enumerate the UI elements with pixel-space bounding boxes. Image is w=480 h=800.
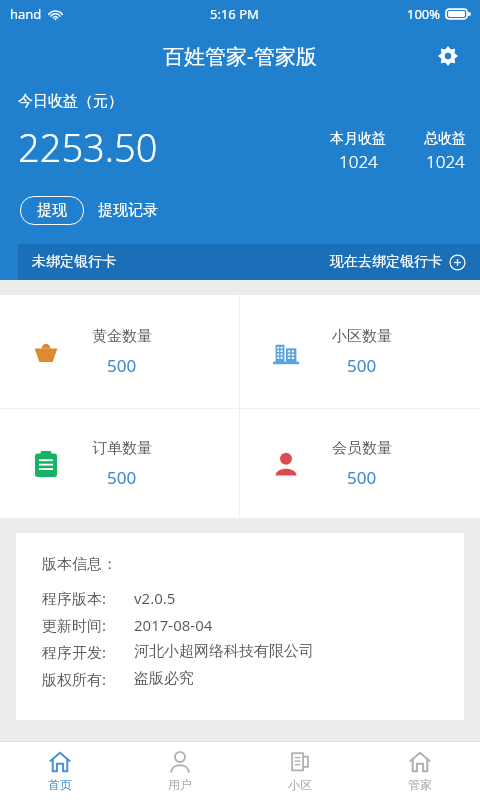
button[interactable]: 小区 (240, 742, 360, 800)
button[interactable]: 提现记录 (84, 195, 172, 226)
button[interactable]: 未绑定银行卡 (18, 244, 480, 280)
staticText: 管家 (408, 777, 432, 792)
staticText: 提现 (37, 201, 67, 220)
staticText: 现在去绑定银行卡 (330, 253, 442, 271)
staticText: 今日收益（元） (18, 92, 123, 111)
staticText: 盗版必究 (134, 669, 194, 688)
button[interactable]: 用户 (120, 742, 240, 800)
staticText: 100% (407, 5, 441, 23)
staticText: 1024 (426, 150, 465, 173)
staticText: 黄金数量 (92, 327, 152, 346)
button[interactable]: Settings (428, 36, 468, 76)
staticText: 1024 (339, 150, 378, 173)
staticText: 小区 (288, 777, 312, 792)
staticText: 500 (107, 354, 137, 377)
staticText: 河北小超网络科技有限公司 (134, 642, 314, 661)
staticText: 百姓管家-管家版 (163, 42, 317, 71)
staticText: 500 (347, 466, 377, 489)
staticText: 程序版本: (42, 588, 107, 608)
staticText: 小区数量 (332, 327, 392, 346)
staticText: 订单数量 (92, 439, 152, 458)
staticText: 提现记录 (98, 201, 158, 220)
staticText: 版权所有: (42, 669, 107, 689)
staticText: 首页 (48, 777, 72, 792)
staticText: 2253.50 (18, 121, 158, 173)
staticText: hand (10, 5, 42, 23)
staticText: 更新时间: (42, 615, 107, 635)
button[interactable]: 管家 (360, 742, 480, 800)
button[interactable]: 首页 (0, 742, 120, 800)
staticText: 版本信息： (42, 555, 117, 574)
staticText: 未绑定银行卡 (32, 253, 116, 271)
staticText: 总收益 (424, 130, 466, 148)
button[interactable]: 订单数量 (0, 409, 239, 518)
staticText: 程序开发: (42, 642, 107, 662)
button[interactable]: 黄金数量 (0, 295, 239, 408)
staticText: 会员数量 (332, 439, 392, 458)
staticText: v2.0.5 (134, 588, 176, 608)
button[interactable]: 小区数量 (240, 295, 480, 408)
staticText: 用户 (168, 777, 192, 792)
staticText: 500 (107, 466, 137, 489)
button[interactable]: 会员数量 (240, 409, 480, 518)
staticText: 5:16 PM (210, 5, 259, 23)
staticText: 本月收益 (330, 130, 386, 148)
staticText: 500 (347, 354, 377, 377)
staticText: 2017-08-04 (134, 615, 213, 635)
button[interactable]: 提现 (20, 196, 84, 225)
